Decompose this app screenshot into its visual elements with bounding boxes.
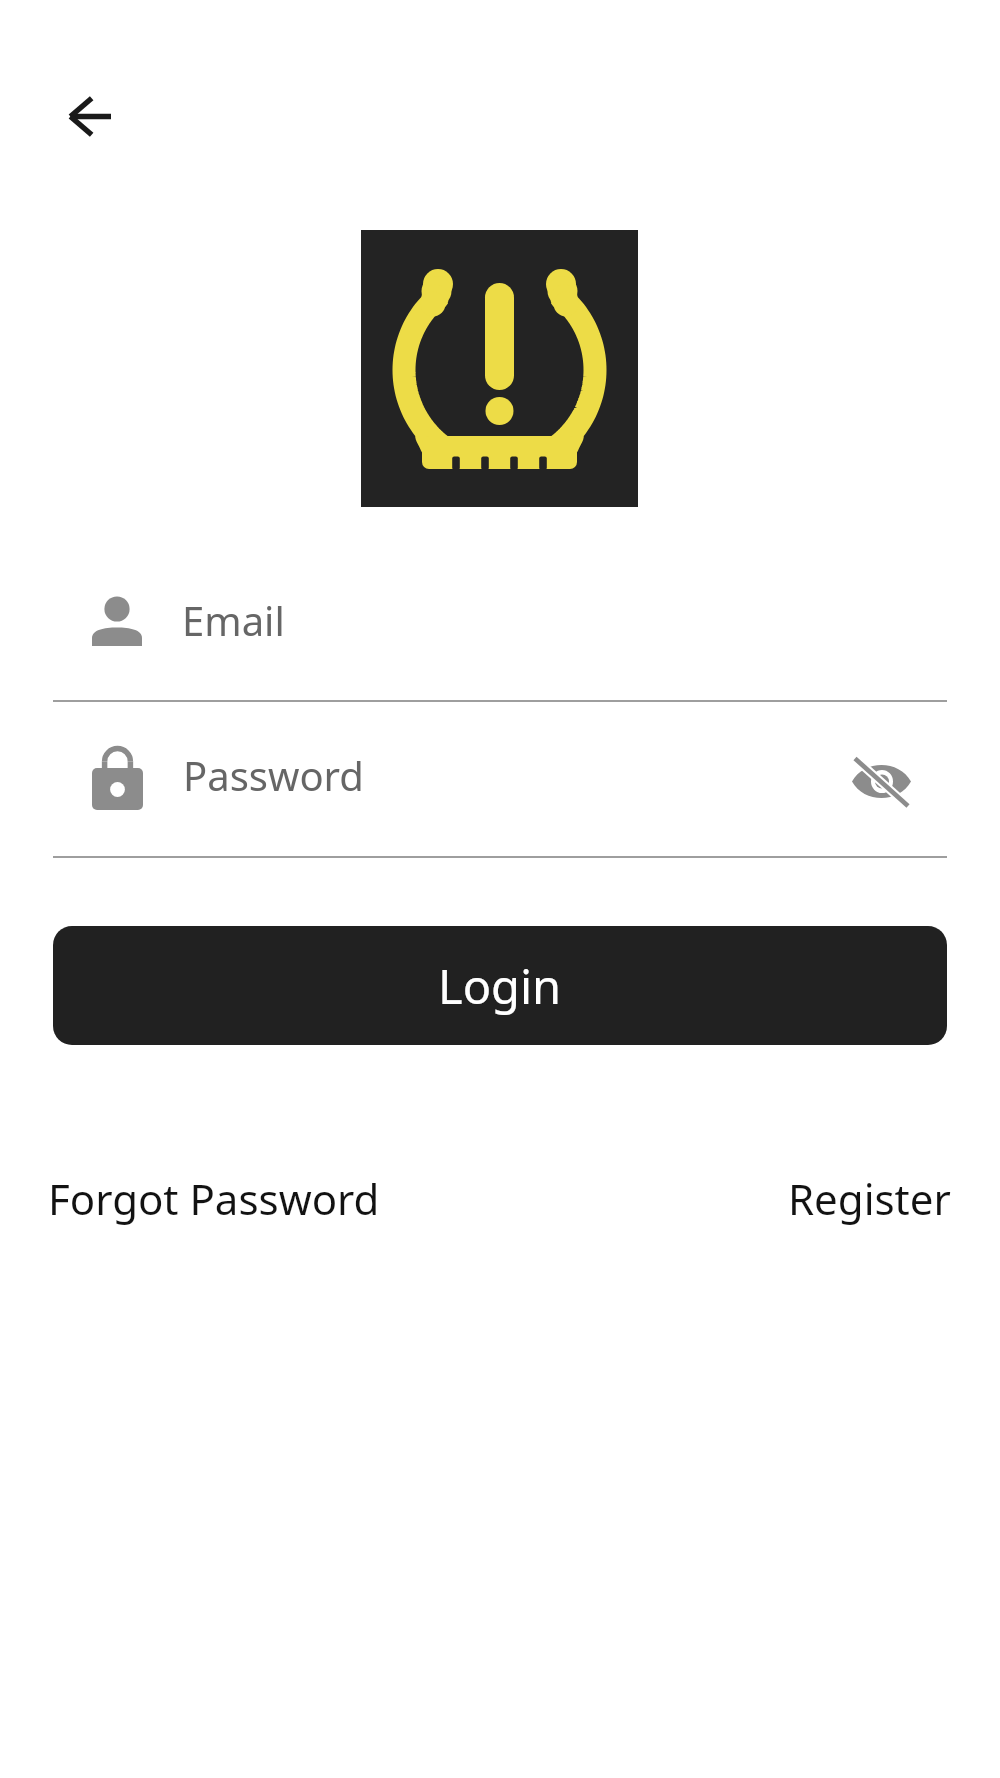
button[interactable]: Email [53,555,947,701]
other: Tyre pressure monitor logo [361,230,638,507]
button[interactable]: Register [788,1170,951,1227]
staticText: Forgot Password [48,1170,380,1227]
staticText: Password [183,748,364,802]
button[interactable]: Password [53,712,834,857]
button[interactable]: Forgot Password [48,1170,380,1227]
button[interactable]: Login [53,926,947,1045]
button[interactable]: Show password [834,730,930,826]
staticText: Login [438,954,562,1018]
staticText: Register [788,1170,951,1227]
staticText: Email [182,593,285,647]
button[interactable]: Back [41,68,137,164]
